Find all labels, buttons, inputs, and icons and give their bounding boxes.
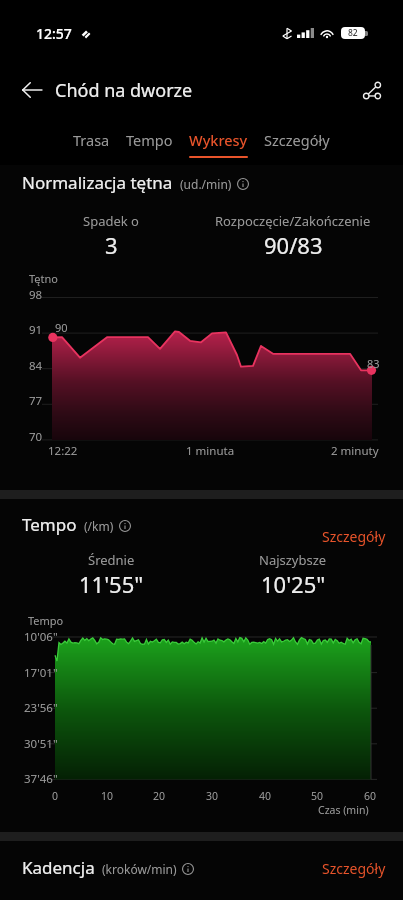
staticText: 30: [206, 789, 219, 803]
staticText: Tempo: [126, 130, 173, 150]
staticText: (ud./min): [180, 176, 232, 192]
staticText: Tempo: [22, 513, 77, 536]
staticText: Chód na dworze: [55, 78, 193, 103]
staticText: 98: [29, 287, 43, 303]
staticText: 20: [153, 789, 166, 803]
button[interactable]: Share: [349, 68, 393, 112]
staticText: (kroków/min): [102, 861, 177, 877]
staticText: 12:57: [36, 24, 72, 43]
button[interactable]: Trasa: [65, 130, 118, 158]
staticText: Kadencja: [22, 856, 95, 879]
staticText: 90: [55, 320, 68, 335]
staticText: Średnie: [88, 551, 135, 569]
staticText: Szczegóły: [322, 859, 386, 878]
staticText: 70: [29, 429, 43, 445]
staticText: (/km): [84, 518, 114, 534]
staticText: Tempo: [28, 613, 64, 628]
staticText: 60: [364, 789, 377, 803]
staticText: 10'06": [24, 629, 58, 645]
staticText: 30'51": [24, 736, 58, 752]
staticText: Najszybsze: [259, 551, 327, 569]
staticText: 37'46": [24, 771, 58, 787]
button[interactable]: Szczegóły: [256, 130, 338, 158]
staticText: Wykresy: [189, 130, 248, 150]
staticText: Szczegóły: [322, 527, 386, 546]
staticText: Szczegóły: [264, 130, 330, 150]
staticText: 10: [101, 789, 114, 803]
staticText: Trasa: [73, 130, 110, 150]
staticText: 2 minuty: [331, 443, 379, 459]
staticText: 10'25": [261, 569, 326, 599]
staticText: Normalizacja tętna: [22, 171, 173, 194]
button[interactable]: Tempo: [118, 130, 181, 158]
staticText: 91: [29, 322, 43, 338]
button[interactable]: Wykresy: [181, 130, 256, 158]
staticText: 82: [348, 27, 358, 39]
staticText: Spadek o: [83, 212, 139, 230]
staticText: 84: [29, 358, 43, 374]
button[interactable]: Szczegóły: [320, 525, 388, 548]
staticText: 90/83: [264, 230, 323, 260]
staticText: 50: [311, 789, 324, 803]
staticText: 0: [52, 789, 59, 803]
button[interactable]: Szczegóły: [320, 857, 388, 880]
staticText: 3: [105, 230, 118, 260]
staticText: 77: [29, 393, 43, 409]
staticText: 11'55": [79, 569, 144, 599]
staticText: 23'56": [24, 700, 58, 716]
staticText: Rozpoczęcie/Zakończenie: [215, 212, 371, 230]
staticText: Tętno: [29, 271, 58, 286]
button[interactable]: Back: [10, 68, 54, 112]
staticText: 83: [367, 356, 380, 371]
staticText: Czas (min): [318, 803, 369, 817]
staticText: 17'01": [24, 665, 58, 681]
staticText: 1 minuta: [186, 443, 235, 459]
staticText: 12:22: [48, 443, 78, 459]
staticText: 40: [259, 789, 272, 803]
